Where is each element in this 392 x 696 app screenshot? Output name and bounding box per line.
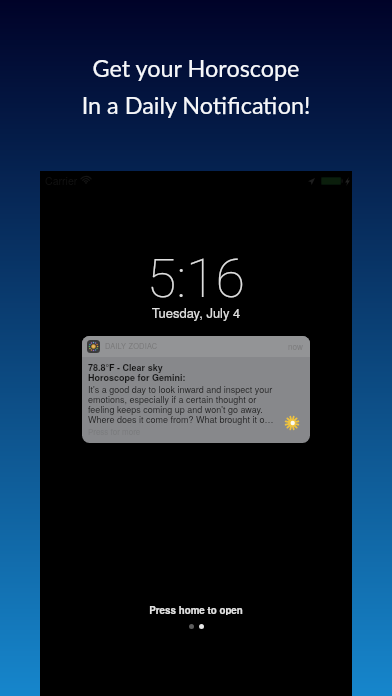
staticText: Tuesday, July 4 [40, 303, 352, 322]
staticText: 78.8°F - Clear sky [88, 361, 163, 374]
staticText: Press home to open [149, 603, 243, 615]
other: Battery full [321, 177, 343, 185]
button[interactable]: Press home to open [40, 603, 352, 615]
button[interactable]: DAILY ZODIAC [82, 336, 310, 443]
other: Wi-Fi signal [82, 176, 90, 184]
staticText: Get your Horoscope [0, 54, 392, 82]
staticText: now [288, 341, 303, 353]
staticText: It's a good day to look inward and inspe… [88, 383, 274, 426]
staticText: Press for more [88, 426, 141, 437]
staticText: Carrier [45, 173, 78, 188]
button[interactable]: Page 2, current [199, 624, 204, 629]
staticText: In a Daily Notification! [0, 91, 392, 119]
button[interactable]: Page 1 [189, 624, 194, 629]
staticText: Horoscope for Gemini: [88, 371, 186, 384]
other: Charging [345, 177, 350, 186]
staticText: 5:16 [40, 247, 352, 310]
staticText: DAILY ZODIAC [105, 341, 158, 352]
other: Location services active [308, 178, 315, 185]
